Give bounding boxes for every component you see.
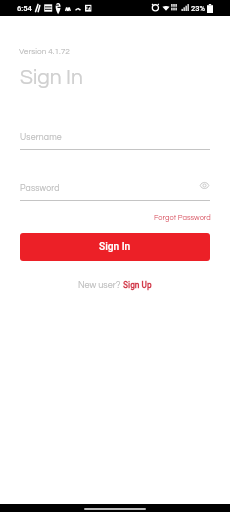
button[interactable]: Forgot Password: [153, 212, 212, 224]
staticText: Sign Up: [123, 280, 152, 290]
button[interactable]: Sign In: [20, 233, 210, 261]
button[interactable]: Show password: [197, 179, 211, 192]
staticText: Sign In: [20, 67, 83, 89]
staticText: Password: [20, 184, 60, 193]
staticText: 23%: [191, 4, 206, 13]
staticText: 6:54: [17, 4, 32, 13]
staticText: Sign In: [99, 241, 131, 253]
staticText: Username: [20, 133, 62, 142]
staticText: New user?: [78, 281, 123, 290]
staticText: Version 4.1.72: [19, 47, 70, 56]
button[interactable]: New user?: [78, 278, 152, 292]
